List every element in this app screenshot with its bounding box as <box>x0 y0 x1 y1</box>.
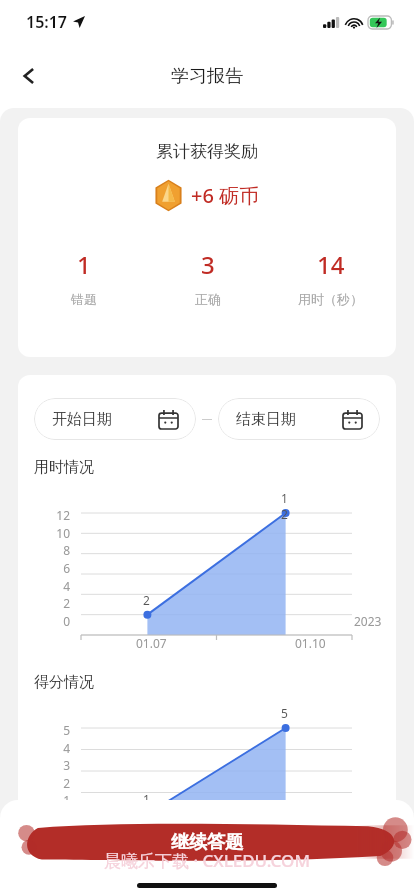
button[interactable]: 1 <box>22 248 146 307</box>
staticText: 得分情况 <box>34 673 94 692</box>
staticText: 用时（秒） <box>298 291 363 307</box>
staticText: 晨曦乐下载 · CXLEDU.COM <box>104 849 310 872</box>
staticText: 14 <box>317 248 345 281</box>
staticText: 错题 <box>71 291 97 307</box>
button[interactable]: 14 <box>269 248 392 307</box>
staticText: 结束日期 <box>236 410 296 429</box>
staticText: 用时情况 <box>34 458 94 477</box>
staticText: 2023 <box>354 613 382 629</box>
staticText: 2 <box>63 595 70 611</box>
staticText: 学习报告 <box>171 65 243 88</box>
button[interactable]: 结束日期 <box>218 398 380 440</box>
staticText: 3 <box>201 248 215 281</box>
button[interactable]: 继续答题 <box>0 820 414 864</box>
staticText: 1 <box>63 792 70 808</box>
staticText: 4 <box>63 740 70 756</box>
staticText: 01.10 <box>295 635 326 651</box>
button[interactable]: 3 <box>146 248 269 307</box>
staticText: 6 <box>63 560 70 576</box>
staticText: 5 <box>63 722 70 738</box>
staticText: 10 <box>56 525 70 541</box>
staticText: 0 <box>63 613 70 629</box>
staticText: 正确 <box>195 291 221 307</box>
staticText: 累计获得奖励 <box>156 141 258 162</box>
button[interactable]: 开始日期 <box>34 398 196 440</box>
staticText: 继续答题 <box>171 831 243 854</box>
button[interactable]: Back <box>8 54 52 98</box>
staticText: 2 <box>63 775 70 791</box>
staticText: 15:17 <box>26 11 68 33</box>
staticText: 3 <box>63 757 70 773</box>
staticText: 1 <box>77 248 91 281</box>
staticText: 8 <box>63 542 70 558</box>
staticText: 12 <box>56 507 70 523</box>
staticText: 01.07 <box>136 635 167 651</box>
staticText: 开始日期 <box>52 410 112 429</box>
staticText: 4 <box>63 578 70 594</box>
staticText: +6 砺币 <box>191 182 260 209</box>
